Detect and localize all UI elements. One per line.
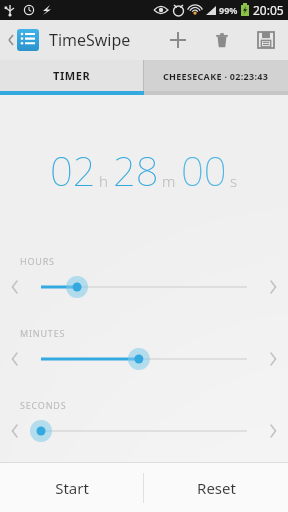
- button[interactable]: Up: [4, 25, 42, 55]
- button[interactable]: Increase HOURS: [258, 272, 288, 302]
- button[interactable]: SECONDS slider: [30, 416, 258, 446]
- staticText: CHEESECAKE · 02:23:43: [163, 70, 269, 82]
- button[interactable]: Decrease HOURS: [0, 272, 30, 302]
- staticText: 99%: [219, 4, 238, 16]
- button[interactable]: Decrease MINUTES: [0, 344, 30, 374]
- staticText: TIMER: [53, 68, 91, 83]
- staticText: 28: [113, 143, 159, 197]
- staticText: Reset: [197, 478, 236, 498]
- staticText: m: [162, 171, 176, 191]
- staticText: SECONDS: [20, 399, 67, 411]
- staticText: 02: [50, 143, 96, 197]
- button[interactable]: CHEESECAKE · 02:23:43: [144, 60, 288, 91]
- button[interactable]: MINUTES slider: [30, 344, 258, 374]
- staticText: h: [99, 171, 108, 191]
- button[interactable]: Delete: [200, 20, 244, 60]
- staticText: Start: [55, 478, 89, 498]
- button[interactable]: TIMER: [0, 60, 143, 91]
- staticText: HOURS: [20, 255, 55, 267]
- button[interactable]: Start: [0, 463, 143, 512]
- staticText: 20:05: [253, 2, 284, 18]
- button[interactable]: Increase SECONDS: [258, 416, 288, 446]
- staticText: 00: [181, 143, 227, 197]
- staticText: s: [230, 171, 238, 191]
- button[interactable]: Increase MINUTES: [258, 344, 288, 374]
- button[interactable]: Save: [244, 20, 288, 60]
- button[interactable]: Reset: [144, 463, 288, 512]
- button[interactable]: HOURS slider: [30, 272, 258, 302]
- staticText: TimeSwipe: [49, 29, 131, 51]
- staticText: MINUTES: [20, 327, 66, 339]
- button[interactable]: Add: [156, 20, 200, 60]
- button[interactable]: Decrease SECONDS: [0, 416, 30, 446]
